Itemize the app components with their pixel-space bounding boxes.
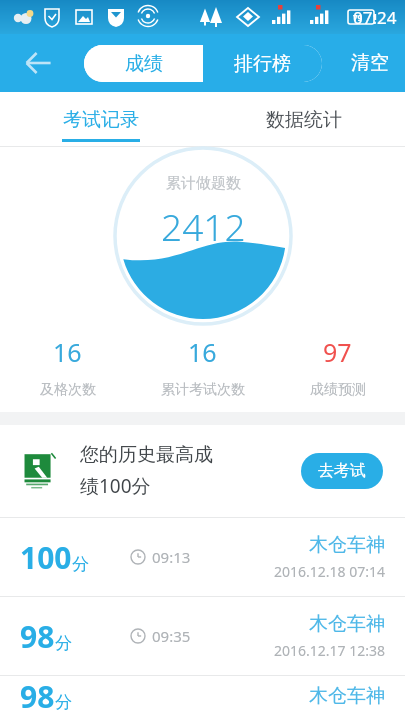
staticText: 排行榜 xyxy=(234,52,291,76)
staticText: 累计做题数 xyxy=(166,174,241,193)
button[interactable]: 排行榜 xyxy=(203,45,322,82)
staticText: 分 xyxy=(72,554,89,575)
staticText: 16 xyxy=(188,335,217,369)
staticText: 09:35 xyxy=(152,626,191,646)
staticText: 2016.12.17 12:38 xyxy=(274,641,385,660)
staticText: 木仓车神 xyxy=(309,533,385,557)
staticText: 09:13 xyxy=(152,547,191,567)
staticText: 79 xyxy=(353,12,363,23)
staticText: 木仓车神 xyxy=(309,612,385,636)
staticText: 累计考试次数 xyxy=(161,381,245,399)
button[interactable]: 成绩 xyxy=(84,45,203,82)
button[interactable]: 16 xyxy=(135,327,270,412)
staticText: 98 xyxy=(20,676,55,716)
button[interactable]: 97 xyxy=(270,327,405,412)
staticText: 分 xyxy=(55,692,72,713)
staticText: 数据统计 xyxy=(266,108,342,132)
staticText: 绩100分 xyxy=(80,473,151,499)
button[interactable]: 100 xyxy=(0,518,405,596)
button[interactable]: 考试记录 xyxy=(0,92,202,147)
staticText: 成绩预测 xyxy=(310,381,366,399)
staticText: 考试记录 xyxy=(63,108,139,132)
staticText: 木仓车神 xyxy=(309,684,385,708)
staticText: 2412 xyxy=(161,201,246,251)
staticText: 07:24 xyxy=(353,6,397,29)
staticText: 清空 xyxy=(351,51,389,75)
staticText: 16 xyxy=(53,335,82,369)
button[interactable]: 数据统计 xyxy=(202,92,405,147)
button[interactable]: Back xyxy=(14,39,62,87)
staticText: 100 xyxy=(20,537,72,578)
staticText: 分 xyxy=(55,633,72,654)
staticText: 您的历史最高成 xyxy=(80,443,213,467)
staticText: 97 xyxy=(323,335,352,369)
button[interactable]: 清空 xyxy=(341,43,399,83)
staticText: 去考试 xyxy=(318,461,366,481)
button[interactable]: 去考试 xyxy=(301,453,383,489)
staticText: 2016.12.18 07:14 xyxy=(274,562,385,581)
button[interactable]: 98 xyxy=(0,676,405,716)
staticText: 成绩 xyxy=(125,52,163,76)
staticText: 98 xyxy=(20,616,55,657)
staticText: 及格次数 xyxy=(40,381,96,399)
button[interactable]: 您的历史最高成 xyxy=(0,425,405,517)
button[interactable]: 98 xyxy=(0,597,405,675)
button[interactable]: 16 xyxy=(0,327,135,412)
